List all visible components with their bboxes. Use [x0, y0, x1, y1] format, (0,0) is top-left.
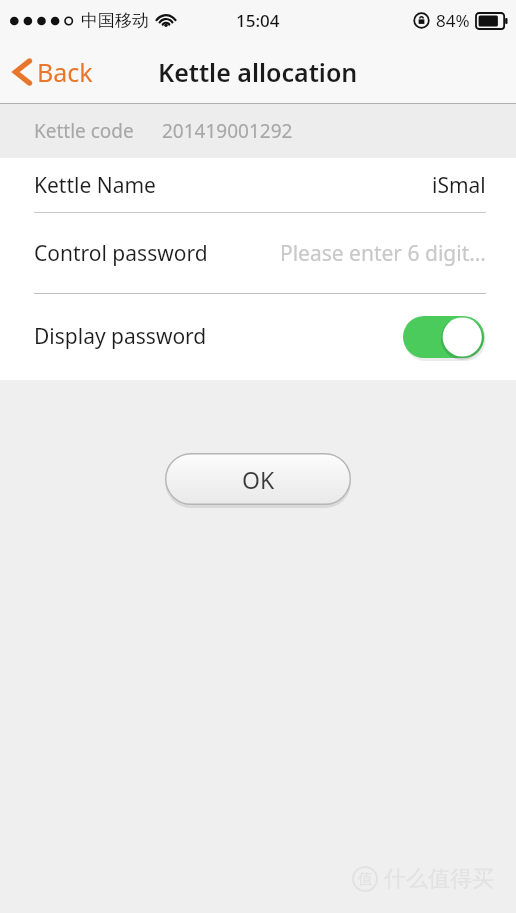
button[interactable]: Please enter 6 digit…: [0, 213, 516, 294]
staticText: Kettle code: [34, 118, 134, 144]
staticText: 中国移动: [81, 10, 149, 31]
staticText: Display password: [34, 322, 207, 351]
staticText: 84%: [436, 9, 470, 32]
staticText: 什么值得买: [384, 865, 494, 893]
button[interactable]: OK: [165, 453, 351, 505]
button[interactable]: Display password: [0, 294, 516, 379]
staticText: Kettle allocation: [158, 55, 358, 89]
button[interactable]: Back: [0, 47, 107, 97]
staticText: Kettle Name: [34, 171, 156, 200]
staticText: iSmal: [432, 171, 486, 200]
button[interactable]: Display password toggle, on: [403, 313, 486, 361]
staticText: 201419001292: [162, 118, 293, 144]
staticText: Please enter 6 digit…: [280, 239, 486, 268]
staticText: Back: [37, 55, 93, 89]
staticText: Control password: [34, 239, 208, 268]
staticText: OK: [242, 464, 275, 495]
staticText: 值: [358, 870, 373, 889]
staticText: 15:04: [236, 9, 280, 32]
button[interactable]: Kettle Name: [0, 158, 516, 212]
